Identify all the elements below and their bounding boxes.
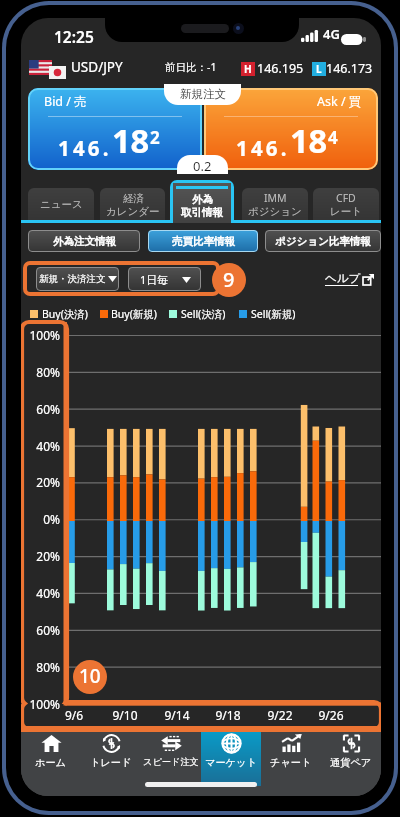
staticText: USD/JPY [71, 58, 123, 76]
staticText: 新規・決済注文 [39, 273, 106, 285]
button[interactable]: 新規・決済注文 [36, 267, 119, 291]
staticText: Sell(新規) [251, 307, 296, 321]
button[interactable]: マーケット [201, 732, 261, 786]
staticText: チャート [270, 756, 312, 769]
button[interactable]: チャート [261, 732, 321, 796]
staticText: 60% [21, 622, 60, 638]
button[interactable]: 売買比率情報 [148, 230, 258, 252]
staticText: 80% [21, 659, 60, 675]
staticText: H [244, 62, 252, 76]
staticText: 通貨ペア [330, 756, 372, 769]
button[interactable]: IMM [242, 188, 308, 221]
button[interactable]: Bid / 売 [28, 88, 202, 170]
staticText: Buy(新規) [111, 307, 157, 321]
staticText: 0% [21, 511, 60, 527]
staticText: ニュース [40, 198, 83, 211]
staticText: 18 [112, 118, 150, 162]
staticText: 外為注文情報 [53, 235, 116, 248]
button[interactable]: 経済 [100, 188, 165, 221]
staticText: 20% [21, 474, 60, 490]
staticText: ポジション [248, 205, 302, 218]
button[interactable]: スピード注文 [141, 732, 201, 796]
staticText: 9/18 [203, 707, 253, 723]
button[interactable]: CFD [313, 188, 379, 221]
staticText: 9/26 [306, 707, 356, 723]
staticText: 新規注文 [180, 87, 226, 101]
staticText: 4G [323, 25, 340, 43]
staticText: 外為 [192, 193, 213, 206]
staticText: 12:25 [54, 26, 94, 47]
staticText: 146.195 [257, 60, 304, 77]
button[interactable]: ヘルプ [325, 271, 374, 286]
staticText: 売買比率情報 [172, 235, 235, 248]
staticText: Sell(決済) [181, 307, 226, 321]
button[interactable]: 通貨ペア [321, 732, 381, 796]
staticText: スピード注文 [143, 756, 199, 768]
button[interactable]: 外為注文情報 [28, 230, 140, 252]
staticText: 前日比：-1 [165, 60, 217, 74]
button[interactable]: ホーム [21, 732, 81, 796]
staticText: 9/22 [255, 707, 305, 723]
staticText: 2 [150, 126, 160, 149]
button[interactable]: Ask / 買 [204, 88, 378, 170]
staticText: 18 [290, 118, 328, 162]
staticText: 146. [58, 134, 112, 162]
button[interactable]: トレード [81, 732, 141, 796]
staticText: 1日毎 [140, 272, 169, 287]
staticText: 40% [21, 585, 60, 601]
staticText: 10 [79, 663, 101, 689]
staticText: Buy(決済) [42, 307, 88, 321]
staticText: ホーム [35, 756, 67, 769]
staticText: カレンダー [106, 205, 160, 218]
staticText: 経済 [123, 192, 144, 205]
staticText: Bid / 売 [44, 93, 87, 110]
button[interactable]: ポジション比率情報 [265, 230, 381, 252]
staticText: 0.2 [193, 157, 212, 174]
staticText: ポジション比率情報 [275, 235, 371, 248]
staticText: 40% [21, 438, 60, 454]
button[interactable]: 1日毎 [128, 267, 201, 291]
staticText: ヘルプ [325, 271, 361, 285]
staticText: 60% [21, 401, 60, 417]
staticText: 146. [236, 134, 290, 162]
button[interactable]: 外為 [173, 183, 231, 223]
staticText: 9 [223, 266, 235, 293]
staticText: CFD [336, 191, 356, 205]
staticText: 9/6 [49, 707, 99, 723]
staticText: IMM [264, 191, 287, 205]
button[interactable]: 新規注文 [164, 84, 241, 105]
staticText: 9/14 [152, 707, 202, 723]
staticText: マーケット [205, 756, 257, 769]
staticText: 146.173 [326, 60, 373, 77]
staticText: L [316, 62, 322, 76]
staticText: 20% [21, 548, 60, 564]
staticText: Ask / 買 [317, 93, 362, 110]
staticText: 取引情報 [181, 206, 223, 219]
staticText: 4 [328, 126, 338, 149]
staticText: 9/10 [100, 707, 150, 723]
staticText: 80% [21, 364, 60, 380]
staticText: トレード [90, 756, 132, 769]
staticText: 100% [21, 696, 60, 712]
staticText: レート [330, 205, 362, 218]
staticText: 100% [21, 327, 60, 343]
button[interactable]: ニュース [28, 188, 94, 221]
